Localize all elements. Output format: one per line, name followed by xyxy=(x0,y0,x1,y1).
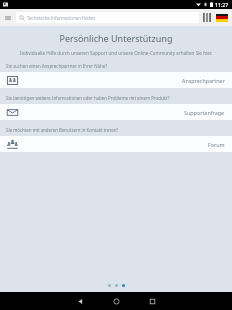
button[interactable]: Scan barcode xyxy=(203,13,213,22)
button[interactable]: Menu xyxy=(4,14,12,22)
button[interactable]: Technische Informationen finden xyxy=(16,12,199,23)
button[interactable]: Forum xyxy=(0,136,232,152)
button[interactable]: Ansprechpartner xyxy=(0,72,232,88)
staticText: Supportanfrage xyxy=(184,109,225,116)
staticText: Individuelle Hilfe durch unseren Support… xyxy=(6,50,226,56)
staticText: 11:27 xyxy=(215,1,229,8)
staticText: Technische Informationen finden xyxy=(27,15,96,21)
staticText: Sie suchen einen Ansprechpartner in Ihre… xyxy=(6,63,226,69)
staticText: Ansprechpartner xyxy=(182,77,225,84)
button[interactable]: Supportanfrage xyxy=(0,104,232,120)
button[interactable]: Page indicator xyxy=(122,284,125,287)
button[interactable]: Recent apps xyxy=(134,292,170,310)
staticText: Sie benötigen weitere Informationen oder… xyxy=(6,95,226,101)
button[interactable]: Page indicator xyxy=(115,284,118,287)
staticText: Sie möchten mit anderen Benutzern in Kon… xyxy=(6,127,226,133)
other: Supportanfrage xyxy=(7,107,18,118)
button[interactable]: Home xyxy=(98,292,134,310)
button[interactable]: Back xyxy=(62,292,98,310)
button[interactable]: Page indicator xyxy=(108,284,111,287)
staticText: Persönliche Unterstützung xyxy=(0,32,232,44)
staticText: Forum xyxy=(208,141,225,148)
other: Ansprechpartner xyxy=(7,75,18,86)
button[interactable]: Language German xyxy=(216,14,228,22)
other: Forum xyxy=(7,139,18,150)
